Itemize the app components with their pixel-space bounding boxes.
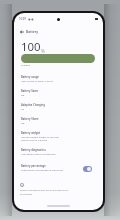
button[interactable]: Adaptive Charging bbox=[14, 103, 103, 110]
staticText: Adaptive Charging bbox=[21, 103, 45, 107]
staticText: Off bbox=[21, 93, 25, 96]
button[interactable]: Battery percentage bbox=[14, 164, 103, 171]
staticText: Battery Share bbox=[21, 117, 39, 121]
button[interactable]: Battery Share bbox=[14, 117, 103, 124]
staticText: % bbox=[41, 48, 45, 54]
staticText: Battery Saver bbox=[21, 89, 39, 93]
button[interactable]: Battery percentage toggle bbox=[83, 166, 92, 172]
staticText: Off bbox=[21, 121, 25, 124]
staticText: Battery widget bbox=[21, 131, 40, 135]
staticText: 10:09 bbox=[19, 17, 26, 21]
staticText: Next charge in about 4 hours bbox=[21, 79, 54, 82]
staticText: 100 bbox=[21, 39, 41, 55]
staticText: Add the Battery widget to see your bbox=[21, 135, 60, 138]
button[interactable]: Battery widget bbox=[14, 131, 103, 141]
staticText: Show battery percentage in status bar bbox=[21, 168, 63, 171]
button[interactable]: Battery usage bbox=[14, 75, 103, 82]
staticText: Charged bbox=[21, 64, 30, 67]
staticText: Battery bbox=[26, 29, 38, 34]
button[interactable]: Back bbox=[19, 29, 24, 34]
staticText: Battery diagnostics bbox=[21, 148, 46, 152]
button[interactable]: Battery diagnostics bbox=[14, 148, 103, 155]
staticText: Your battery works as expected bbox=[21, 152, 56, 155]
button[interactable]: Battery Saver bbox=[14, 89, 103, 96]
staticText: Battery percentage bbox=[21, 164, 46, 168]
staticText: Battery usage bbox=[21, 75, 39, 79]
staticText: On bbox=[21, 107, 25, 110]
staticText: Battery information may not be accurate … bbox=[20, 189, 69, 196]
staticText: battery level at a glance bbox=[21, 138, 48, 141]
